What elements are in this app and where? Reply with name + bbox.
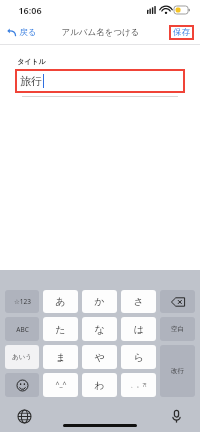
staticText: アルバム名をつける xyxy=(61,27,140,38)
button[interactable]: 改行 xyxy=(160,345,195,397)
button[interactable]: 旅行 xyxy=(15,69,185,93)
staticText: わ xyxy=(94,379,105,392)
button[interactable]: ら xyxy=(121,345,156,369)
button[interactable]: あいう xyxy=(5,345,39,369)
button[interactable]: Delete xyxy=(160,290,195,313)
staticText: あ xyxy=(55,295,66,308)
staticText: さ xyxy=(133,295,144,308)
other: Back xyxy=(7,28,16,37)
button[interactable]: ☆123 xyxy=(5,290,39,313)
button[interactable]: わ xyxy=(82,373,117,397)
staticText: 旅行 xyxy=(20,74,42,88)
staticText: な xyxy=(94,323,105,336)
button[interactable]: 空白 xyxy=(160,317,195,341)
staticText: 16:06 xyxy=(18,4,42,16)
staticText: 保存 xyxy=(173,27,190,38)
staticText: ら xyxy=(133,351,144,364)
staticText: 戻る xyxy=(19,27,37,38)
button[interactable]: ま xyxy=(43,345,78,369)
staticText: 、。?! xyxy=(130,381,147,389)
button[interactable]: あ xyxy=(43,290,78,313)
button[interactable]: Change keyboard xyxy=(14,406,34,426)
staticText: か xyxy=(94,295,105,308)
button[interactable]: な xyxy=(82,317,117,341)
button[interactable]: や xyxy=(82,345,117,369)
button[interactable]: ABC xyxy=(5,317,39,341)
button[interactable]: Back xyxy=(0,24,43,41)
staticText: タイトル xyxy=(17,57,46,66)
button[interactable]: は xyxy=(121,317,156,341)
staticText: あいう xyxy=(12,353,32,361)
button[interactable]: Emoji xyxy=(5,373,39,397)
staticText: ^_^ xyxy=(55,380,67,390)
staticText: た xyxy=(55,323,66,336)
staticText: ☆123 xyxy=(14,297,31,306)
staticText: ABC xyxy=(16,325,29,334)
button[interactable]: た xyxy=(43,317,78,341)
button[interactable]: ^_^ xyxy=(43,373,78,397)
button[interactable]: さ xyxy=(121,290,156,313)
button[interactable]: 保存 xyxy=(169,25,194,40)
button[interactable]: か xyxy=(82,290,117,313)
staticText: 空白 xyxy=(171,325,184,333)
button[interactable]: Dictation xyxy=(166,406,186,426)
staticText: ま xyxy=(55,351,66,364)
staticText: や xyxy=(94,351,105,364)
button[interactable]: 、。?! xyxy=(121,373,156,397)
staticText: 改行 xyxy=(171,367,184,375)
staticText: は xyxy=(133,323,144,336)
